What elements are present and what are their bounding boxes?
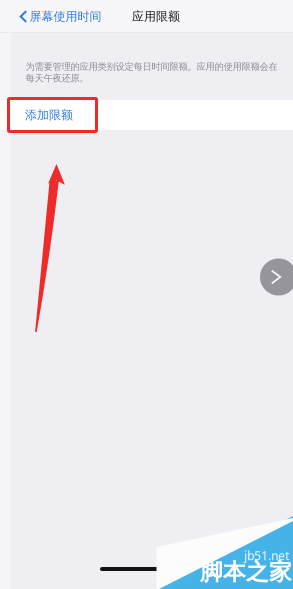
staticText: 添加限额 (25, 108, 73, 122)
button[interactable]: 屏幕使用时间 (0, 0, 107, 33)
staticText: jb51.net (244, 547, 289, 563)
staticText: 脚本之家 (200, 558, 292, 586)
staticText: 为需要管理的应用类别设定每日时间限额。应用的使用限额会在每天午夜还原。 (25, 61, 277, 84)
button[interactable]: 添加限额 (0, 100, 293, 130)
staticText: 应用限额 (132, 9, 180, 24)
button[interactable]: 下一页 (260, 258, 293, 295)
staticText: 屏幕使用时间 (29, 9, 101, 24)
